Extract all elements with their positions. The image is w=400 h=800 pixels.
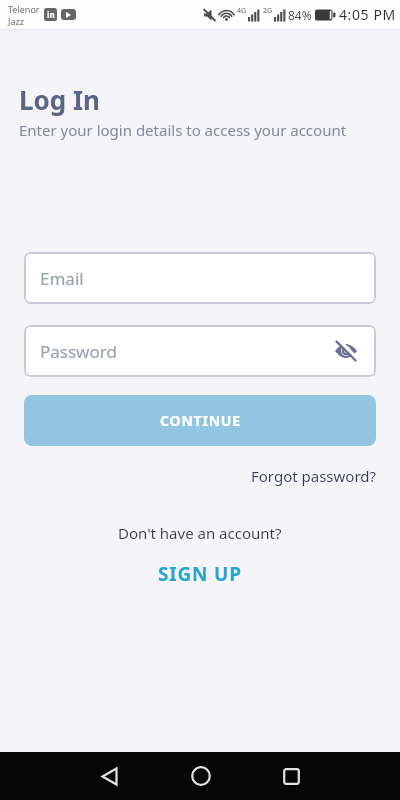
staticText: Jazz: [8, 15, 24, 27]
staticText: Enter your login details to access your …: [19, 120, 347, 140]
staticText: 4:05 PM: [339, 5, 396, 24]
staticText: 84%: [288, 7, 312, 23]
button[interactable]: [246, 752, 337, 800]
staticText: Don't have an account?: [118, 523, 282, 543]
staticText: Log In: [19, 82, 100, 117]
staticText: in: [47, 9, 55, 20]
button[interactable]: [64, 752, 155, 800]
button[interactable]: Forgot password?: [251, 466, 377, 486]
button[interactable]: Password: [24, 325, 376, 377]
staticText: Telenor: [8, 3, 40, 15]
button[interactable]: [334, 339, 358, 363]
staticText: Email: [40, 267, 84, 290]
staticText: Password: [40, 340, 117, 363]
staticText: CONTINUE: [160, 411, 241, 430]
button[interactable]: [155, 752, 246, 800]
button[interactable]: SIGN UP: [158, 561, 242, 587]
staticText: 2G: [263, 6, 273, 16]
button[interactable]: Email: [24, 252, 376, 304]
button[interactable]: CONTINUE: [24, 395, 376, 446]
staticText: 4G: [237, 6, 247, 16]
